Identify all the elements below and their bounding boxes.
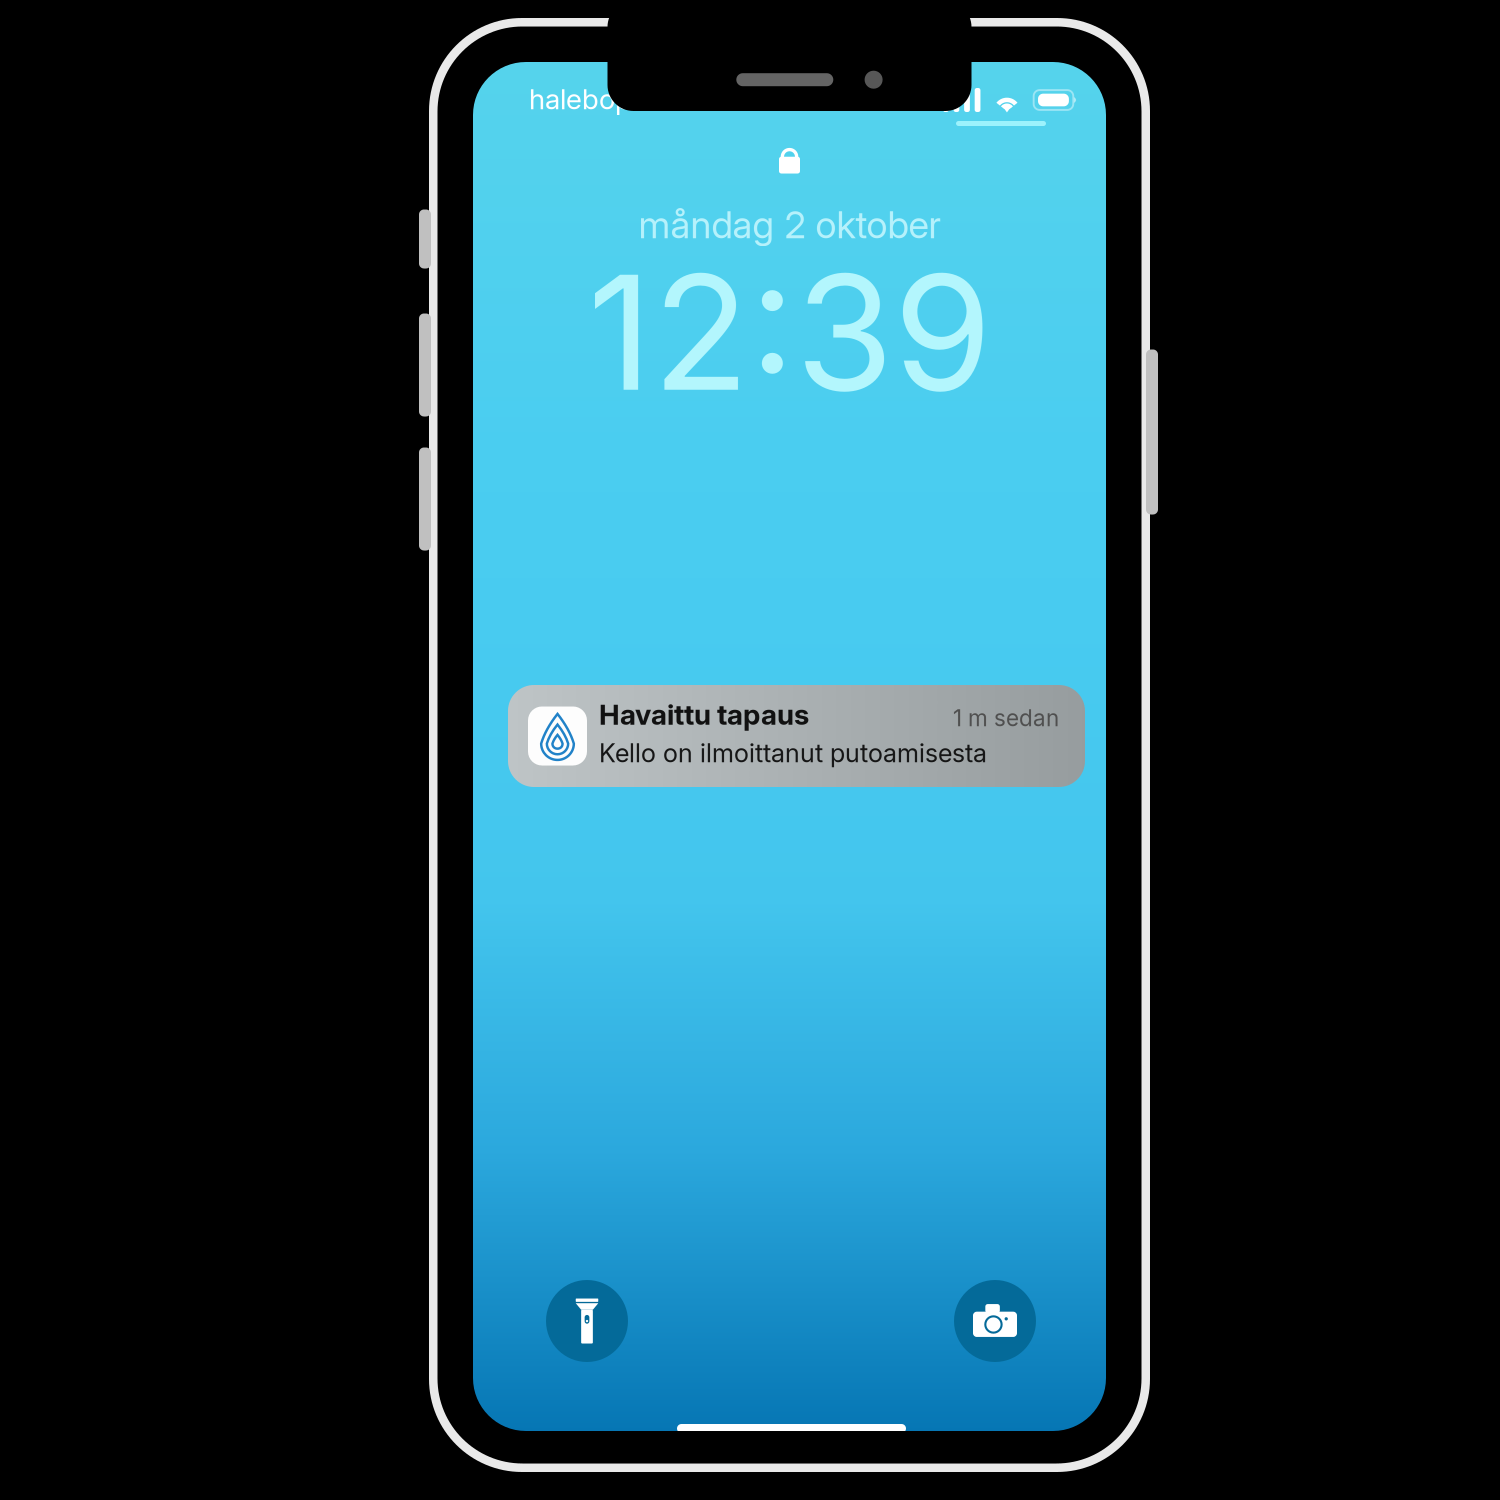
staticText: Havaittu tapaus — [599, 698, 809, 732]
staticText: 12:39 — [587, 236, 991, 428]
staticText: 1 m sedan — [953, 704, 1059, 732]
staticText: halebop — [529, 82, 632, 116]
staticText: måndag 2 oktober — [638, 202, 940, 247]
button[interactable]: Camera — [954, 1280, 1036, 1362]
button[interactable]: Flashlight — [546, 1280, 628, 1362]
staticText: Kello on ilmoittanut putoamisesta — [599, 738, 987, 768]
button[interactable]: Havaittu tapaus — [508, 685, 1085, 787]
